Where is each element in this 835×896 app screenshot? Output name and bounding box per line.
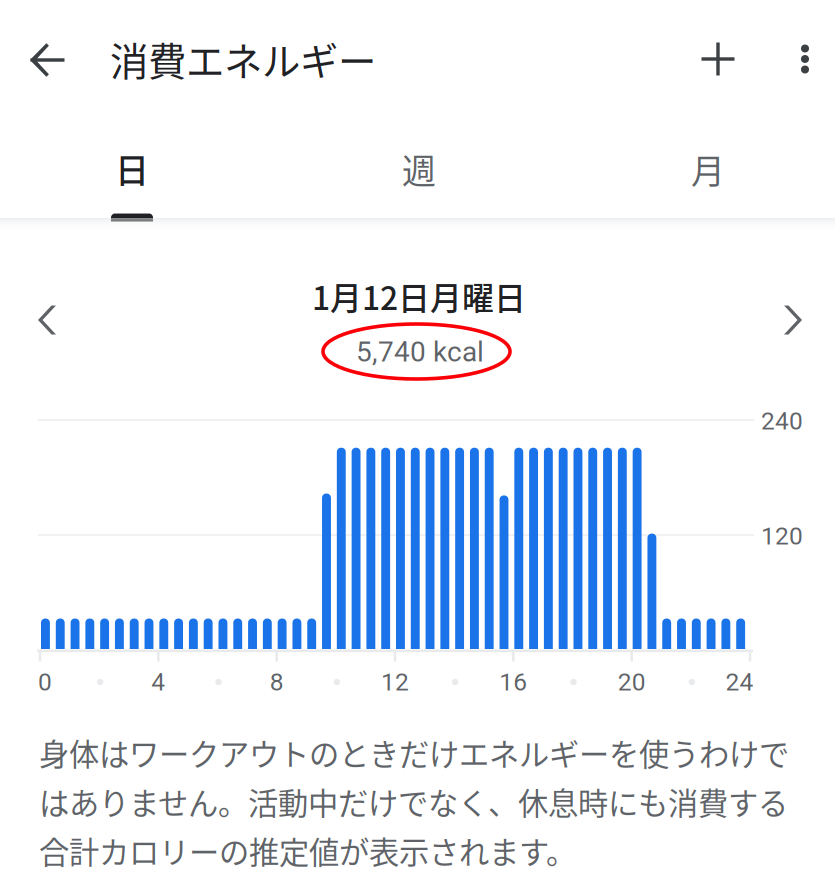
- button[interactable]: Back: [2, 15, 92, 105]
- staticText: 24: [725, 668, 753, 696]
- staticText: 週: [402, 144, 436, 194]
- staticText: 120: [761, 522, 803, 550]
- button[interactable]: More options: [773, 14, 835, 104]
- button[interactable]: 週: [275, 111, 562, 226]
- staticText: 20: [618, 668, 646, 696]
- staticText: 12: [381, 668, 409, 696]
- staticText: 月: [691, 144, 725, 194]
- button[interactable]: 月: [564, 111, 835, 226]
- button[interactable]: Add: [674, 14, 762, 104]
- staticText: 0: [38, 668, 52, 696]
- staticText: 消費エネルギー: [110, 31, 376, 87]
- staticText: 1月12日月曜日: [312, 273, 526, 319]
- staticText: 合計カロリーの推定値が表示されます。: [39, 829, 576, 872]
- button[interactable]: Previous day: [7, 277, 87, 363]
- button[interactable]: Next day: [753, 277, 833, 363]
- staticText: 身体はワークアウトのときだけエネルギーを使うわけで: [39, 731, 789, 774]
- staticText: 16: [499, 668, 527, 696]
- staticText: 5,740 kcal: [356, 336, 484, 368]
- button[interactable]: 日: [0, 106, 275, 221]
- staticText: はありません。活動中だけでなく、休息時にも消費する: [39, 780, 788, 823]
- staticText: 8: [270, 668, 284, 696]
- staticText: 日: [115, 144, 149, 193]
- staticText: 240: [761, 407, 803, 435]
- staticText: 4: [151, 668, 165, 696]
